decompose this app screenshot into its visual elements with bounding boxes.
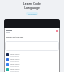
button[interactable]: Hello World: [6, 52, 58, 57]
staticText: Hello World: [10, 58, 20, 60]
button[interactable]: Get started: [26, 12, 38, 15]
staticText: Hello World: [10, 63, 20, 65]
staticText: Get started: [28, 13, 37, 15]
button[interactable]: Hello World: [6, 67, 58, 72]
staticText: Words of the day: [6, 36, 24, 39]
button[interactable]: Hello World: [6, 57, 58, 62]
staticText: 5 min lesson: [10, 60, 19, 62]
staticText: Language: [24, 6, 40, 10]
button[interactable]: [5, 41, 59, 51]
staticText: Hello World: [10, 68, 20, 70]
staticText: 5 min lesson: [10, 70, 19, 72]
button[interactable]: Hello World: [6, 62, 58, 67]
staticText: Hello World: [10, 53, 20, 55]
staticText: Learn Code: [23, 2, 41, 6]
staticText: 5 min lesson: [10, 65, 19, 67]
staticText: 5 min lesson: [10, 55, 19, 57]
